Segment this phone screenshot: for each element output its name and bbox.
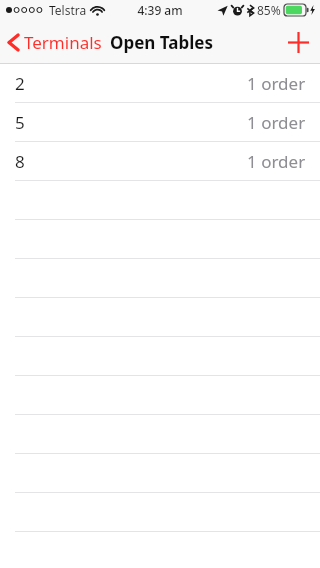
staticText: Telstra <box>49 2 87 18</box>
staticText: Terminals <box>24 31 102 54</box>
button[interactable]: 5 <box>0 103 320 141</box>
staticText: 1 order <box>247 72 306 95</box>
button[interactable]: Terminals <box>0 20 108 64</box>
staticText: 1 order <box>247 150 306 173</box>
staticText: Open Tables <box>110 31 213 54</box>
staticText: 85% <box>257 2 281 18</box>
button[interactable]: 8 <box>0 142 320 180</box>
staticText: 8 <box>15 150 25 173</box>
button[interactable]: Add table <box>276 20 320 64</box>
staticText: 5 <box>15 111 25 134</box>
button[interactable]: 2 <box>0 64 320 102</box>
staticText: 1 order <box>247 111 306 134</box>
staticText: 2 <box>15 72 25 95</box>
staticText: 4:39 am <box>137 2 183 18</box>
